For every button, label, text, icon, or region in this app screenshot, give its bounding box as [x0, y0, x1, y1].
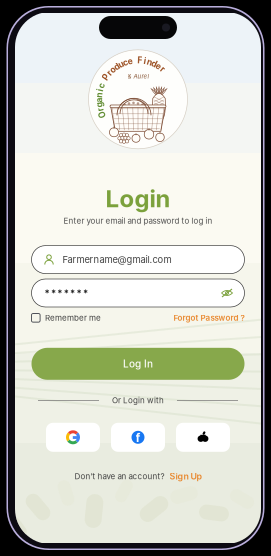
staticText: e: [128, 56, 133, 66]
staticText: d: [152, 59, 157, 69]
staticText: n: [97, 90, 102, 100]
staticText: e: [156, 61, 161, 71]
staticText: [102, 76, 104, 86]
staticText: i: [99, 85, 101, 95]
button[interactable]: Sign in with Google: [46, 423, 100, 452]
button[interactable]: Farmername@gmail.com: [31, 246, 244, 274]
staticText: F: [137, 55, 142, 65]
staticText: r: [161, 64, 164, 74]
staticText: *: [51, 287, 56, 299]
staticText: g: [97, 100, 102, 110]
staticText: i: [144, 56, 146, 66]
staticText: a: [96, 95, 101, 105]
button[interactable]: Sign in with Facebook: [111, 423, 165, 452]
staticText: Don't have an account?: [74, 471, 164, 481]
staticText: Log In: [123, 358, 153, 370]
staticText: P: [103, 72, 109, 82]
button[interactable]: Remember me: [31, 313, 101, 323]
button[interactable]: *: [31, 279, 244, 307]
staticText: *: [76, 287, 81, 299]
button[interactable]: Sign in with Apple: [176, 423, 230, 452]
staticText: Enter your email and password to log in: [63, 216, 212, 226]
staticText: Remember me: [45, 313, 101, 323]
staticText: Forgot Password ?: [173, 313, 244, 323]
staticText: Farmername@gmail.com: [62, 254, 171, 265]
button[interactable]: Forgot Password ?: [173, 313, 244, 323]
button[interactable]: Log In: [31, 348, 244, 380]
staticText: c: [99, 80, 104, 91]
staticText: *: [64, 287, 69, 299]
staticText: O: [99, 109, 106, 120]
staticText: *: [44, 287, 49, 299]
staticText: d: [114, 62, 119, 72]
staticText: Sign Up: [169, 471, 201, 482]
staticText: r: [99, 105, 102, 115]
staticText: u: [118, 59, 123, 69]
staticText: Login: [105, 184, 170, 213]
staticText: *: [57, 287, 62, 299]
staticText: & Aurel: [127, 73, 148, 80]
staticText: c: [123, 57, 128, 67]
staticText: r: [108, 68, 111, 78]
staticText: *: [83, 287, 88, 299]
staticText: n: [147, 57, 152, 67]
button[interactable]: Sign Up: [169, 471, 201, 482]
staticText: *: [70, 287, 75, 299]
staticText: f: [135, 430, 140, 445]
staticText: Or Login with: [112, 395, 164, 405]
staticText: o: [110, 64, 115, 75]
